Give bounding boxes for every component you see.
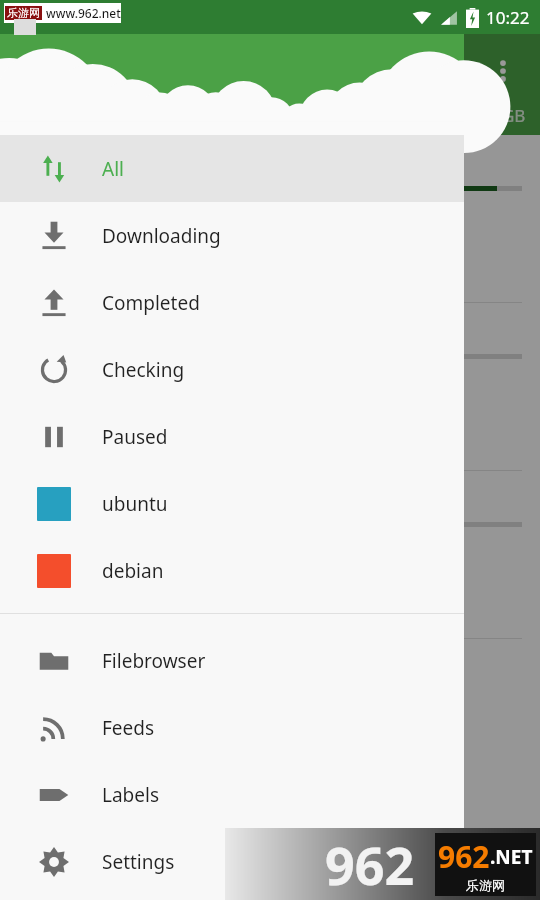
staticText: Completed [102,290,200,316]
button[interactable]: ubuntu [0,470,464,537]
button[interactable]: Feeds [0,694,464,761]
button[interactable]: Labels [0,761,464,828]
staticText: Free space:3.4 GB [384,104,526,127]
staticText: archlinux.iso [18,485,125,510]
staticText: Downloading [102,223,221,249]
button[interactable]: debian-11.iso [0,303,540,471]
staticText: 962 [438,836,490,877]
staticText: Uploaded: 0 B [18,421,124,443]
staticText: Peers: 6/13 [18,201,102,223]
staticText: Feeds [102,715,155,741]
button[interactable]: Completed [0,269,464,336]
staticText: 乐游网 [466,877,505,893]
staticText: 962 [325,829,415,900]
button[interactable]: Sort [434,48,480,94]
staticText: .NET [490,844,533,870]
staticText: 乐游网 [7,6,40,20]
staticText: Paused [102,424,168,450]
staticText: Down: 0 B/s [18,563,108,585]
button[interactable]: ubuntu-20.04.iso [0,135,540,303]
staticText: Labels [102,782,160,808]
button[interactable]: debian [0,537,464,604]
staticText: Peers: 60/250 [18,369,121,391]
button[interactable]: Downloading [0,202,464,269]
staticText: Settings [102,849,175,875]
staticText: Down: 7 B/s [18,227,108,249]
button[interactable]: More options [480,48,526,94]
button[interactable]: Checking [0,336,464,403]
button[interactable]: Paused [0,403,464,470]
staticText: ubuntu-20.04.iso [18,149,161,174]
button[interactable]: archlinux.iso [0,471,540,639]
staticText: ubuntu [102,491,168,517]
staticText: All [102,156,124,182]
staticText: debian [102,558,164,584]
staticText: Filebrowser [102,648,206,674]
staticText: Peers: 29/250 [18,537,121,559]
button[interactable]: All [0,135,464,202]
staticText: 10:22 [486,6,530,29]
staticText: Checking [102,357,185,383]
button[interactable]: Filebrowser [0,627,464,694]
staticText: www.962.net [43,5,121,21]
button[interactable]: Settings [0,828,464,895]
